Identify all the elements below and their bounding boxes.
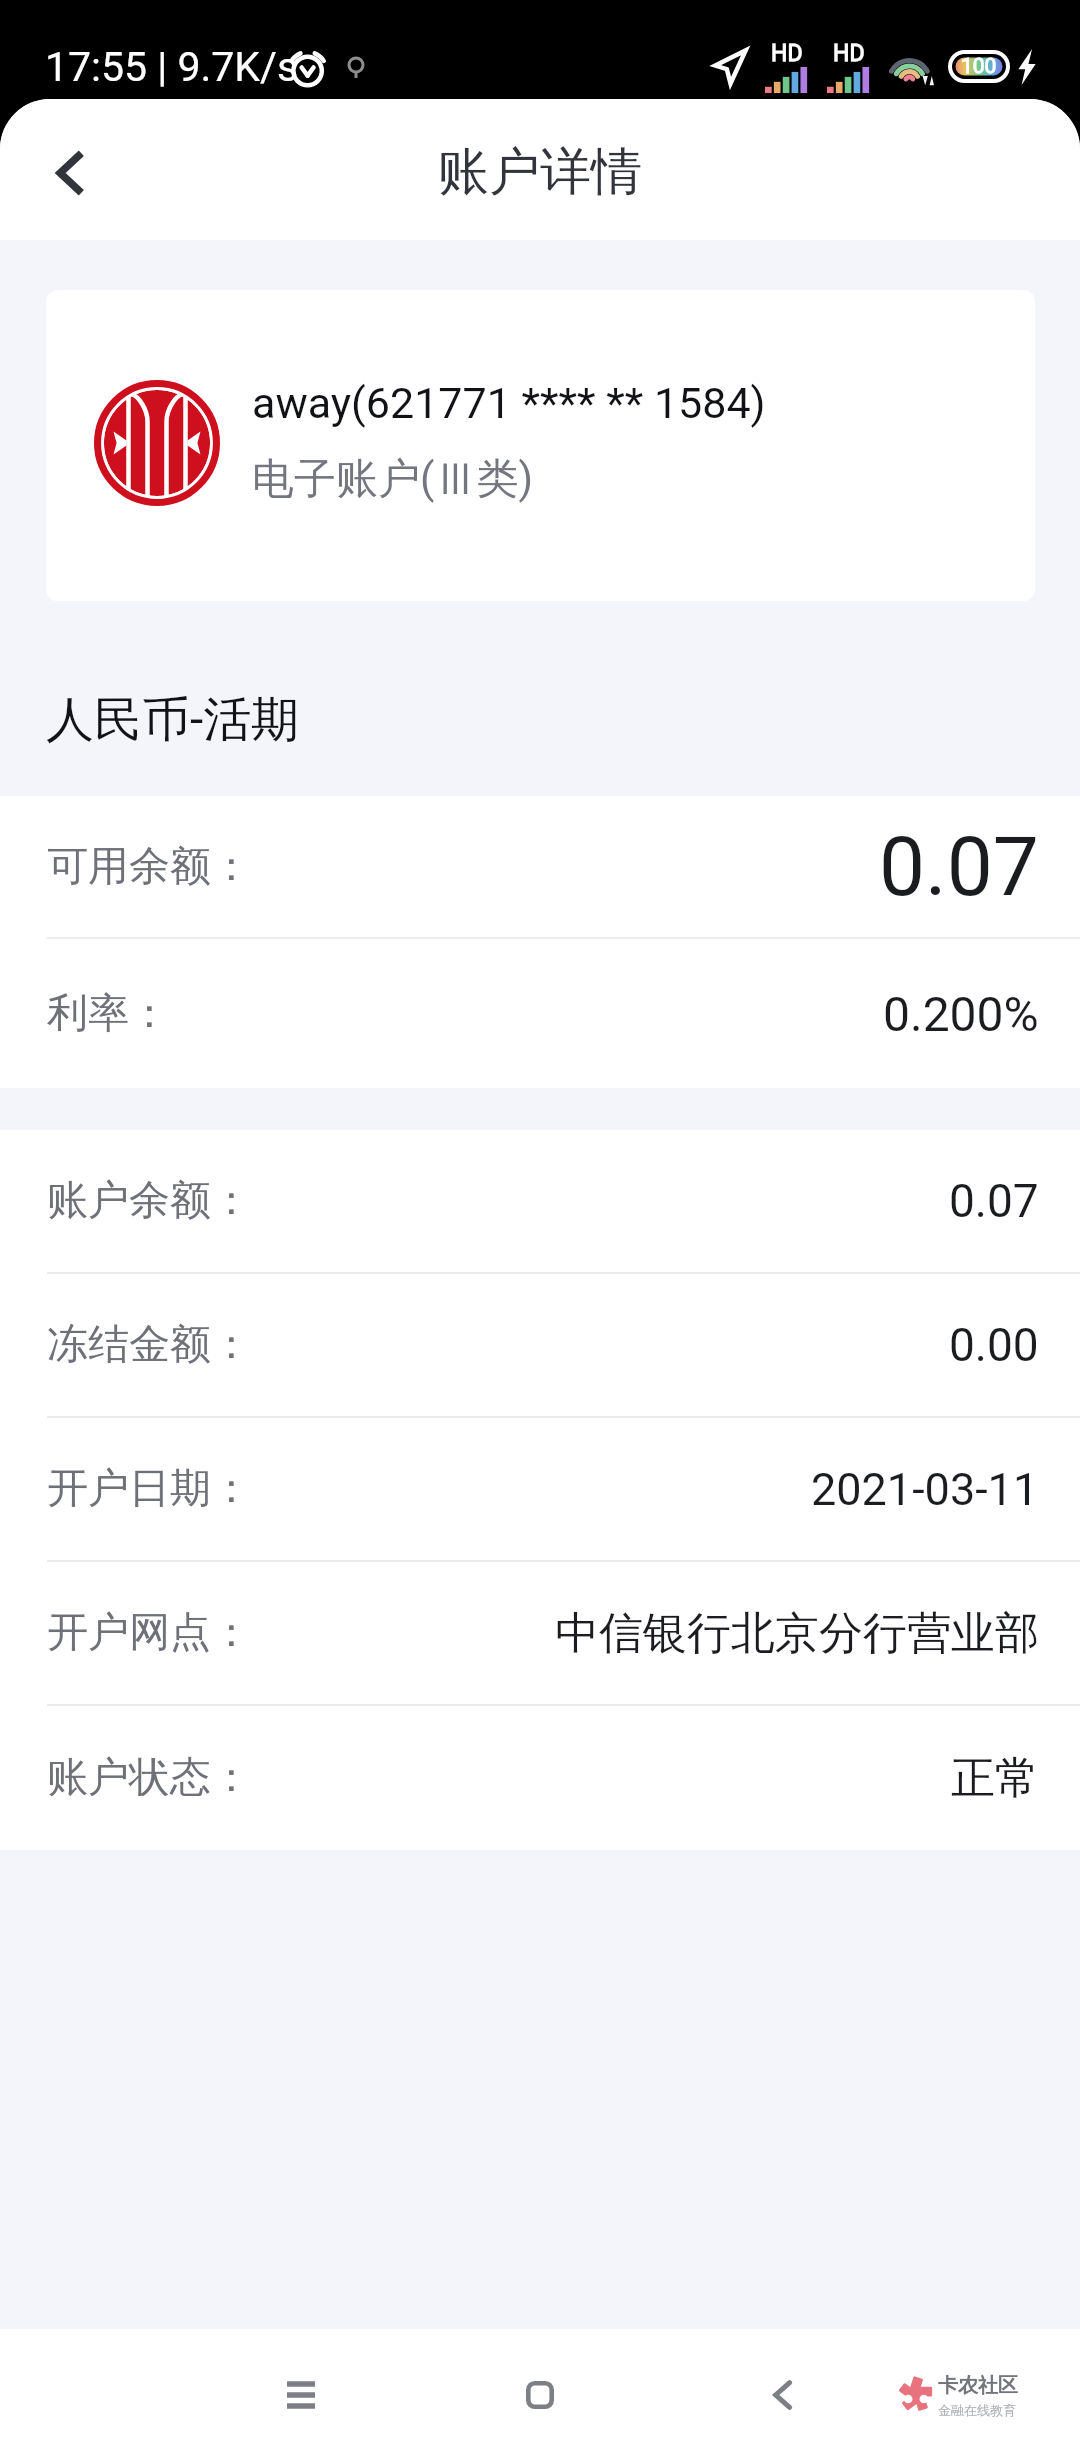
button[interactable]: 开户日期： — [0, 1418, 1080, 1560]
staticText: 人民币-活期 — [46, 690, 300, 750]
staticText: 金融在线教育 — [938, 2402, 1016, 2418]
staticText: away(621771 **** ** 1584) — [252, 378, 766, 428]
button[interactable]: 账户状态： — [0, 1706, 1080, 1850]
button[interactable]: Home — [480, 2335, 600, 2455]
button[interactable]: Back — [722, 2335, 842, 2455]
staticText: 100 — [961, 54, 997, 79]
staticText: 账户余额： — [47, 1175, 252, 1227]
staticText: 利率： — [47, 988, 170, 1040]
staticText: 17:55 | 9.7K/s — [45, 43, 299, 91]
staticText: 开户日期： — [47, 1463, 252, 1515]
staticText: 0.00 — [949, 1318, 1039, 1372]
staticText: 账户详情 — [438, 140, 642, 204]
staticText: 冻结金额： — [47, 1319, 252, 1371]
button[interactable]: 可用余额： — [0, 796, 1080, 937]
staticText: 卡农社区 — [938, 2373, 1018, 2398]
button[interactable]: away(621771 **** ** 1584) — [46, 290, 1035, 601]
staticText: HD — [771, 40, 803, 67]
staticText: 2021-03-11 — [811, 1463, 1039, 1516]
staticText: 0.200% — [883, 986, 1039, 1042]
staticText: HD — [833, 40, 865, 67]
staticText: 正常 — [951, 1751, 1039, 1806]
staticText: 0.07 — [879, 819, 1039, 915]
button[interactable]: 账户余额： — [0, 1130, 1080, 1272]
button[interactable]: 利率： — [0, 939, 1080, 1088]
button[interactable]: 开户网点： — [0, 1562, 1080, 1704]
staticText: 开户网点： — [47, 1607, 252, 1659]
staticText: 中信银行北京分行营业部 — [555, 1606, 1039, 1661]
staticText: 电子账户(Ⅲ类) — [252, 453, 533, 506]
button[interactable]: Recent apps — [241, 2335, 361, 2455]
button[interactable]: Back — [0, 99, 130, 240]
staticText: 账户状态： — [47, 1752, 252, 1804]
button[interactable]: 冻结金额： — [0, 1274, 1080, 1416]
staticText: 可用余额： — [47, 841, 252, 893]
staticText: 0.07 — [949, 1174, 1039, 1228]
